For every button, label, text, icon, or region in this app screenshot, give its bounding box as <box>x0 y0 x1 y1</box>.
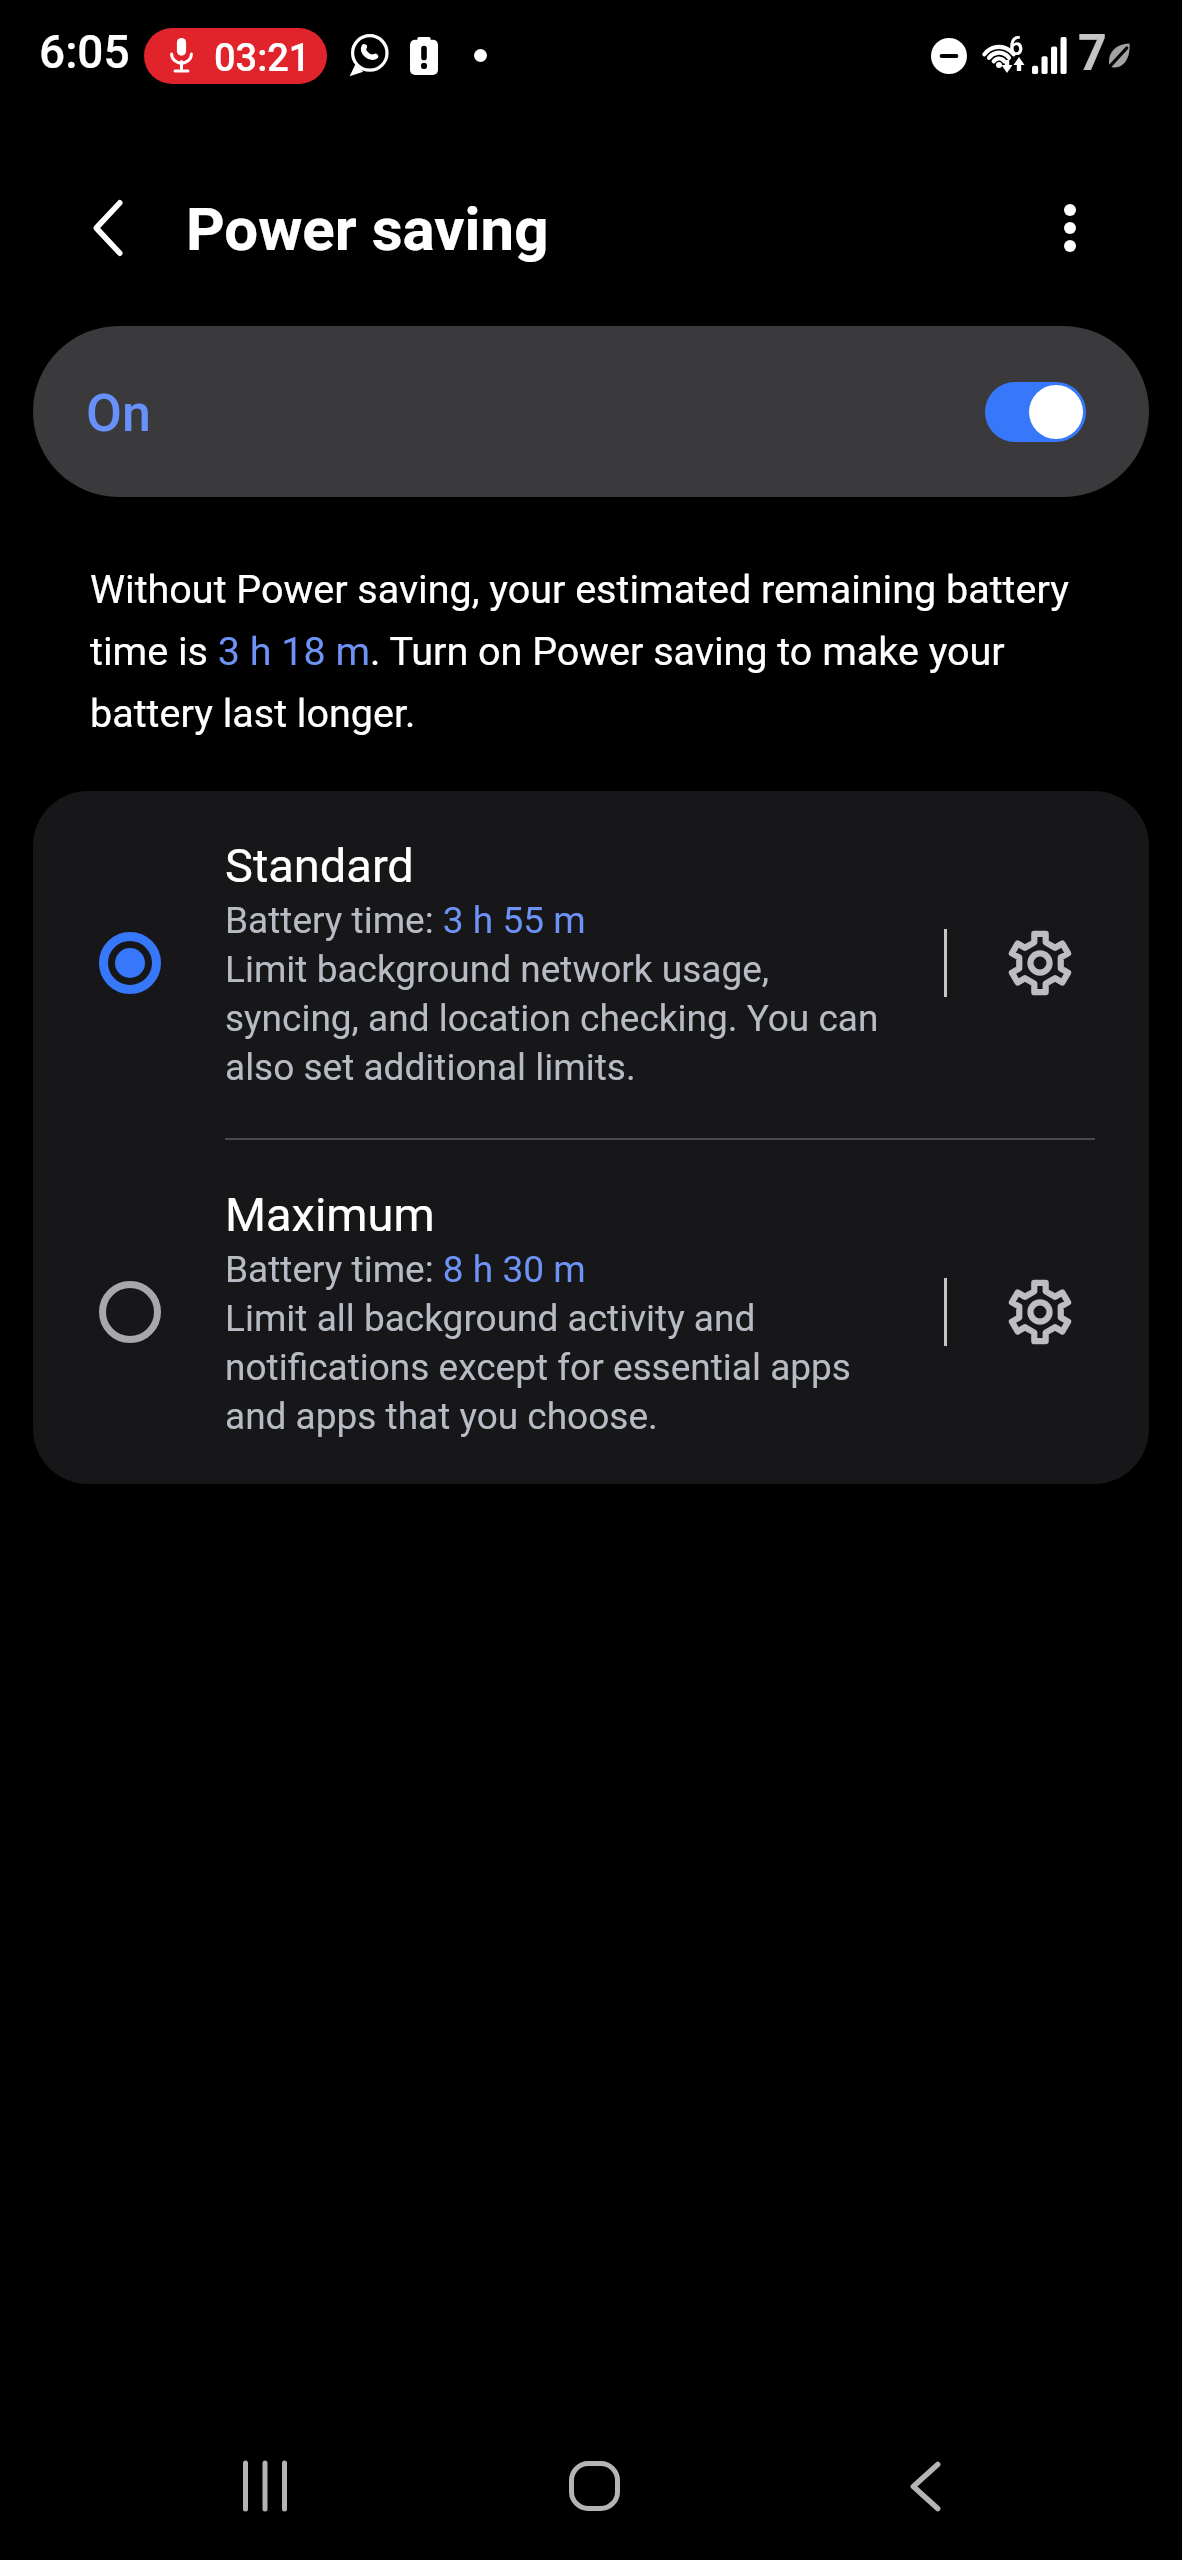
button[interactable]: Navigate up <box>48 168 168 288</box>
button[interactable]: Home <box>534 2426 654 2546</box>
button[interactable]: Power saving, On <box>33 326 1149 497</box>
button[interactable]: Standard <box>33 791 1149 1135</box>
button[interactable]: More options <box>1010 168 1130 288</box>
staticText: 6:05 <box>39 22 130 80</box>
button[interactable]: Standard settings <box>975 898 1105 1028</box>
staticText: Maximum <box>225 1185 435 1243</box>
staticText: Standard <box>225 836 414 894</box>
staticText: 6 <box>1009 31 1024 61</box>
staticText: Power saving <box>186 190 549 266</box>
button[interactable]: Recent apps <box>205 2426 325 2546</box>
staticText: 7 <box>1078 21 1107 83</box>
button[interactable]: Maximum settings <box>975 1247 1105 1377</box>
staticText: 03:21 <box>214 35 311 81</box>
staticText: Battery time: 3 h 55 m Limit background … <box>225 894 879 1090</box>
button[interactable]: Back <box>865 2426 985 2546</box>
staticText: Battery time: 8 h 30 m Limit all backgro… <box>225 1243 851 1439</box>
button[interactable]: Maximum <box>33 1140 1149 1484</box>
staticText: Without Power saving, your estimated rem… <box>90 554 1069 740</box>
staticText: On <box>86 382 151 444</box>
